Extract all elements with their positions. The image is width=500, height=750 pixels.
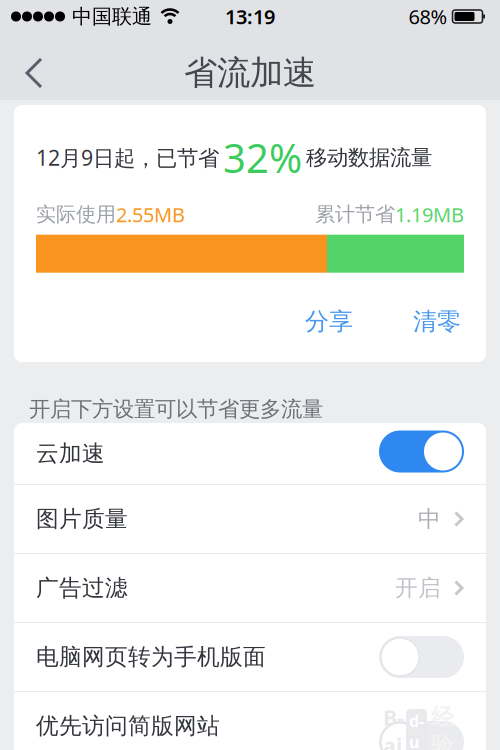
button[interactable]: 清零	[413, 307, 461, 336]
button[interactable]: 广告过滤	[14, 554, 486, 622]
button[interactable]: Toggle off	[379, 636, 464, 678]
staticText: du	[409, 710, 424, 750]
button[interactable]: 云加速	[14, 423, 486, 484]
staticText: 13:19	[225, 3, 275, 30]
staticText: 省流加速	[184, 52, 316, 93]
button[interactable]: 图片质量	[14, 485, 486, 553]
button[interactable]: Toggle on	[379, 430, 464, 472]
staticText: 68%	[408, 3, 447, 30]
staticText: 2.55MB	[116, 201, 185, 228]
staticText: 实际使用	[36, 202, 116, 227]
staticText: 广告过滤	[36, 574, 128, 602]
button[interactable]: 优先访问简版网站	[14, 692, 486, 750]
staticText: 中国联通	[72, 4, 152, 29]
staticText: 32%	[223, 131, 302, 184]
staticText: 1.19MB	[395, 201, 464, 228]
staticText: 移动数据流量	[306, 144, 432, 171]
staticText: 分享	[305, 307, 353, 336]
staticText: 累计节省	[315, 202, 395, 227]
staticText: 经验	[431, 703, 454, 750]
button[interactable]: 电脑网页转为手机版面	[14, 623, 486, 691]
staticText: 中	[418, 505, 441, 533]
staticText: 优先访问简版网站	[36, 712, 220, 740]
staticText: 云加速	[36, 440, 105, 467]
staticText: 开启下方设置可以节省更多流量	[29, 396, 323, 422]
button[interactable]: 分享	[305, 307, 353, 336]
button[interactable]: Back	[0, 31, 43, 101]
staticText: 12月9日起，已节省	[36, 143, 219, 172]
staticText: 电脑网页转为手机版面	[36, 643, 266, 671]
button[interactable]: Toggle off	[379, 721, 464, 750]
staticText: Bai	[383, 703, 404, 750]
staticText: 开启	[395, 574, 441, 602]
staticText: 清零	[413, 307, 461, 336]
staticText: 图片质量	[36, 505, 128, 533]
